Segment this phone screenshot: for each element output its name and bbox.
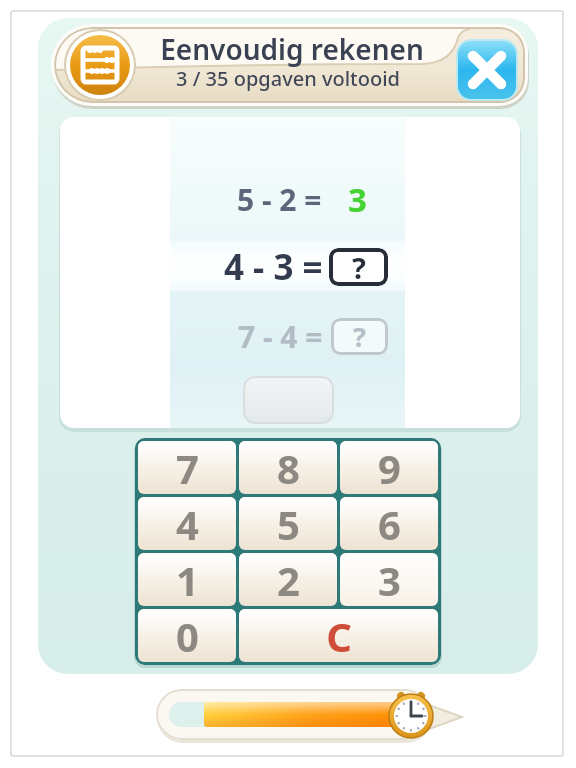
staticText: 1: [176, 553, 199, 606]
button[interactable]: 7: [138, 441, 236, 494]
staticText: 0: [176, 609, 199, 662]
staticText: C: [326, 609, 352, 662]
staticText: 3: [378, 553, 401, 606]
button[interactable]: 8: [239, 441, 337, 494]
button[interactable]: [243, 376, 334, 424]
staticText: 8: [277, 441, 300, 494]
button[interactable]: 3: [340, 553, 438, 606]
button[interactable]: 0: [138, 609, 236, 662]
staticText: ?: [353, 318, 366, 355]
staticText: ?: [352, 248, 366, 286]
button[interactable]: 2: [239, 553, 337, 606]
button[interactable]: 1: [138, 553, 236, 606]
staticText: 7 - 4 =: [238, 316, 323, 357]
staticText: 4 - 3 =: [224, 243, 323, 291]
button[interactable]: 5: [239, 497, 337, 550]
staticText: 9: [378, 441, 401, 494]
button[interactable]: 4: [138, 497, 236, 550]
staticText: 5: [277, 497, 300, 550]
staticText: 6: [378, 497, 401, 550]
button[interactable]: C: [239, 609, 438, 662]
button[interactable]: 9: [340, 441, 438, 494]
staticText: 5 - 2 =: [237, 179, 322, 220]
staticText: 3: [348, 177, 367, 222]
staticText: 3 / 35 opgaven voltooid: [176, 65, 400, 92]
button[interactable]: [64, 29, 136, 101]
staticText: 7: [176, 441, 199, 494]
button[interactable]: 6: [340, 497, 438, 550]
staticText: 4: [176, 497, 199, 550]
staticText: 2: [277, 553, 300, 606]
button[interactable]: [456, 39, 518, 101]
staticText: Eenvoudig rekenen: [160, 30, 424, 68]
